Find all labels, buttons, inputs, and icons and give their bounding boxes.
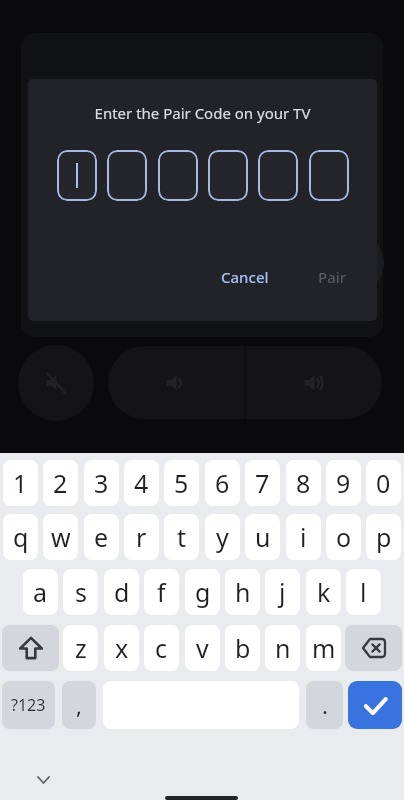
button[interactable]: l [346, 569, 381, 615]
staticText: k [317, 575, 331, 609]
staticText: 3 [94, 466, 109, 500]
button[interactable]: 0 [366, 460, 401, 506]
staticText: Enter the Pair Code on your TV [28, 103, 377, 123]
staticText: v [196, 631, 209, 665]
staticText: h [235, 575, 251, 609]
button[interactable] [345, 625, 402, 671]
staticText: 5 [174, 466, 189, 500]
button[interactable]: p [366, 514, 401, 560]
staticText: . [322, 690, 328, 720]
button[interactable]: Cancel [214, 257, 276, 297]
button[interactable]: 1 [3, 460, 38, 506]
button[interactable]: 7 [245, 460, 280, 506]
button[interactable]: 4 [124, 460, 159, 506]
staticText: Pair [318, 267, 347, 287]
button[interactable]: ?123 [2, 681, 55, 729]
button[interactable] [31, 768, 55, 792]
button[interactable]: b [225, 625, 260, 671]
button[interactable]: w [43, 514, 78, 560]
button[interactable] [348, 681, 402, 729]
button[interactable]: h [225, 569, 260, 615]
staticText: d [114, 575, 130, 609]
staticText: 0 [376, 466, 391, 500]
button[interactable]: z [63, 625, 98, 671]
button[interactable]: g [185, 569, 220, 615]
button[interactable]: n [265, 625, 300, 671]
staticText: r [136, 520, 147, 554]
staticText: z [75, 631, 87, 665]
button[interactable]: o [326, 514, 361, 560]
button[interactable]: u [245, 514, 280, 560]
staticText: 4 [134, 466, 149, 500]
staticText: i [300, 520, 307, 554]
button[interactable]: d [104, 569, 139, 615]
button[interactable]: Pair [310, 257, 354, 297]
staticText: 6 [215, 466, 230, 500]
button[interactable]: j [265, 569, 300, 615]
button[interactable]: f [144, 569, 179, 615]
staticText: 9 [336, 466, 351, 500]
button[interactable]: 8 [286, 460, 321, 506]
button[interactable]: t [164, 514, 199, 560]
button[interactable]: 3 [84, 460, 119, 506]
staticText: ?123 [11, 694, 46, 716]
staticText: q [13, 520, 29, 554]
staticText: o [336, 520, 352, 554]
button[interactable]: c [144, 625, 179, 671]
staticText: g [195, 575, 211, 609]
button[interactable]: 2 [43, 460, 78, 506]
button[interactable]: q [3, 514, 38, 560]
staticText: Cancel [221, 267, 269, 287]
button[interactable]: 5 [164, 460, 199, 506]
staticText: f [157, 575, 166, 609]
button[interactable]: 6 [205, 460, 240, 506]
button[interactable]: . [306, 681, 343, 729]
staticText: t [177, 520, 187, 554]
button[interactable]: s [63, 569, 98, 615]
staticText: a [33, 575, 48, 609]
staticText: 7 [255, 466, 270, 500]
staticText: u [255, 520, 271, 554]
staticText: 1 [13, 466, 28, 500]
staticText: l [360, 575, 367, 609]
button[interactable]: r [124, 514, 159, 560]
staticText: j [279, 575, 286, 609]
button[interactable]: y [205, 514, 240, 560]
staticText: , [76, 690, 82, 720]
staticText: y [216, 520, 229, 554]
button[interactable] [18, 345, 94, 421]
button[interactable]: v [185, 625, 220, 671]
staticText: m [312, 631, 336, 665]
staticText: x [115, 631, 129, 665]
button[interactable] [246, 346, 382, 419]
staticText: p [376, 520, 392, 554]
button[interactable]: 9 [326, 460, 361, 506]
button[interactable]: , [62, 681, 96, 729]
staticText: 8 [296, 466, 311, 500]
button[interactable]: a [23, 569, 58, 615]
staticText: c [155, 631, 168, 665]
button[interactable]: e [84, 514, 119, 560]
staticText: s [75, 575, 87, 609]
staticText: 2 [53, 466, 68, 500]
button[interactable]: x [104, 625, 139, 671]
button[interactable]: m [306, 625, 341, 671]
staticText: w [51, 520, 71, 554]
staticText: b [235, 631, 251, 665]
button[interactable] [2, 625, 59, 671]
staticText: e [94, 520, 109, 554]
staticText: n [275, 631, 291, 665]
button[interactable]: k [306, 569, 341, 615]
button[interactable]: i [286, 514, 321, 560]
